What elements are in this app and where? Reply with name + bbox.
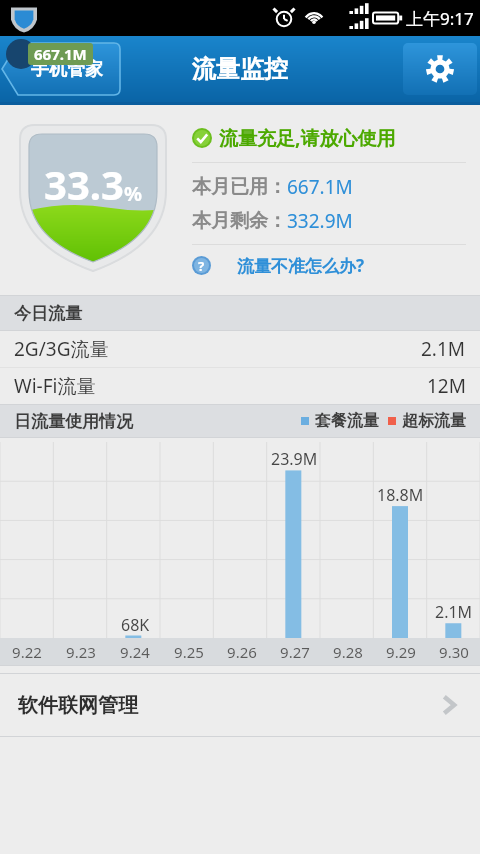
- staticText: 18.8M: [377, 484, 424, 506]
- button[interactable]: 2G/3G流量: [0, 331, 480, 367]
- staticText: 本月剩余：: [192, 209, 287, 233]
- staticText: 套餐流量: [315, 411, 379, 431]
- button[interactable]: 软件联网管理: [0, 674, 480, 736]
- staticText: 流量不准怎么办?: [237, 254, 365, 277]
- staticText: %: [124, 180, 143, 207]
- staticText: 上午9:17: [406, 7, 474, 30]
- staticText: 2G/3G流量: [14, 336, 109, 362]
- staticText: 流量充足,请放心使用: [219, 125, 396, 151]
- staticText: 9.23: [66, 642, 96, 662]
- staticText: 2.1M: [435, 601, 473, 623]
- staticText: 日流量使用情况: [14, 411, 133, 432]
- staticText: 33.3: [44, 157, 124, 211]
- staticText: 本月已用：: [192, 175, 287, 199]
- staticText: 9.25: [174, 642, 204, 662]
- staticText: 9.28: [333, 642, 363, 662]
- staticText: 9.27: [280, 642, 310, 662]
- staticText: 23.9M: [271, 448, 318, 470]
- button[interactable]: 设置: [403, 43, 477, 95]
- staticText: Wi-Fi流量: [14, 373, 96, 399]
- staticText: ?: [198, 257, 205, 275]
- staticText: 9.29: [386, 642, 416, 662]
- staticText: 332.9M: [287, 208, 353, 234]
- staticText: 68K: [121, 614, 150, 636]
- staticText: 667.1M: [287, 174, 353, 200]
- staticText: 今日流量: [14, 303, 82, 324]
- staticText: 2.1M: [421, 336, 466, 362]
- staticText: 超标流量: [402, 411, 466, 431]
- staticText: 9.30: [439, 642, 469, 662]
- staticText: 手机管家: [31, 58, 103, 81]
- staticText: 流量监控: [192, 54, 288, 84]
- staticText: 软件联网管理: [18, 693, 138, 718]
- button[interactable]: Wi-Fi流量: [0, 368, 480, 404]
- staticText: 9.24: [120, 642, 150, 662]
- staticText: 12M: [427, 373, 466, 399]
- staticText: 9.22: [12, 642, 42, 662]
- button[interactable]: ?: [192, 254, 365, 277]
- button[interactable]: 手机管家: [2, 43, 120, 95]
- staticText: 667.1M: [34, 44, 87, 64]
- staticText: 9.26: [227, 642, 257, 662]
